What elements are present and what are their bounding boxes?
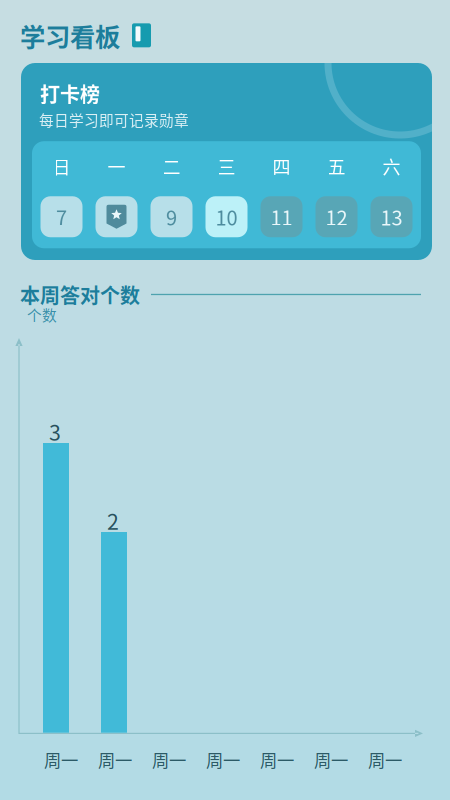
staticText: 四 xyxy=(272,153,290,179)
staticText: 一 xyxy=(107,153,125,179)
staticText: 三 xyxy=(217,153,235,179)
staticText: 周一 xyxy=(98,747,132,772)
staticText: 五 xyxy=(327,153,345,179)
staticText: 9 xyxy=(166,202,177,231)
button[interactable]: 10 xyxy=(205,196,247,237)
staticText: 个数 xyxy=(27,304,57,325)
staticText: 12 xyxy=(325,202,347,231)
button[interactable]: 11 xyxy=(260,196,302,237)
staticText: 3 xyxy=(49,416,61,447)
staticText: 周一 xyxy=(314,747,348,772)
staticText: 周一 xyxy=(260,747,294,772)
button[interactable]: 13 xyxy=(370,196,412,237)
staticText: 每日学习即可记录勋章 xyxy=(39,109,189,130)
button[interactable]: 12 xyxy=(315,196,357,237)
staticText: 周一 xyxy=(44,747,78,772)
staticText: 周一 xyxy=(368,747,402,772)
staticText: 周一 xyxy=(206,747,240,772)
staticText: 2 xyxy=(107,505,119,536)
staticText: 周一 xyxy=(152,747,186,772)
staticText: 打卡榜 xyxy=(40,79,100,108)
staticText: 7 xyxy=(56,202,67,231)
button[interactable]: 9 xyxy=(150,196,192,237)
staticText: 学习看板 xyxy=(20,17,120,54)
button[interactable] xyxy=(95,196,137,237)
staticText: 二 xyxy=(162,153,180,179)
staticText: 六 xyxy=(382,153,400,179)
staticText: 11 xyxy=(270,202,292,231)
staticText: 本周答对个数 xyxy=(20,280,140,309)
staticText: 10 xyxy=(215,202,237,231)
staticText: 日 xyxy=(52,153,70,179)
staticText: 13 xyxy=(380,202,402,231)
button[interactable]: 7 xyxy=(40,196,82,237)
